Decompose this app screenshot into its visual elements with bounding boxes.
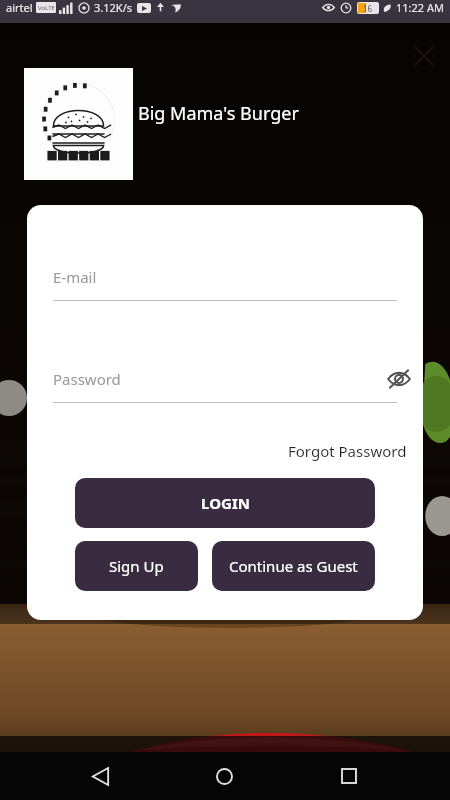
staticText: 11:22 AM: [396, 0, 444, 15]
staticText: 16: [363, 3, 373, 14]
button[interactable]: Back: [76, 752, 124, 800]
staticText: 3.12K/s: [94, 0, 132, 15]
button[interactable]: Recent apps: [325, 752, 373, 800]
button[interactable]: LOGIN: [75, 478, 375, 528]
staticText: Forgot Password: [288, 441, 407, 461]
button[interactable]: Close: [404, 36, 444, 76]
staticText: Password: [53, 369, 121, 389]
button[interactable]: Continue as Guest: [212, 541, 375, 591]
staticText: VoLTE: [38, 4, 55, 12]
staticText: Continue as Guest: [229, 556, 358, 576]
staticText: Big Mama's Burger: [138, 101, 299, 126]
staticText: LOGIN: [201, 493, 250, 513]
staticText: airtel: [6, 0, 33, 15]
staticText: E-mail: [53, 267, 97, 287]
button[interactable]: Sign Up: [75, 541, 198, 591]
button[interactable]: Forgot Password: [267, 435, 407, 467]
button[interactable]: Home: [200, 752, 248, 800]
staticText: Sign Up: [109, 556, 164, 576]
button[interactable]: Password: [53, 359, 397, 403]
button[interactable]: Show password: [377, 357, 421, 401]
button[interactable]: E-mail: [53, 257, 397, 301]
